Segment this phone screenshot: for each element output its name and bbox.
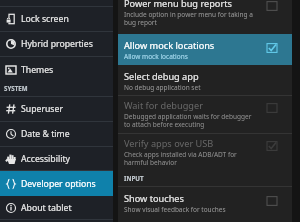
button[interactable]: Accessibility (0, 147, 113, 170)
button[interactable]: Verify apps over USB (118, 134, 292, 168)
button[interactable]: Toggle setting (265, 0, 278, 12)
button[interactable]: Toggle setting (265, 139, 278, 152)
button[interactable]: Wait for debugger (118, 96, 292, 134)
staticText: Hybrid properties (21, 38, 93, 50)
staticText: Select debug app (124, 70, 199, 83)
button[interactable]: Toggle setting (265, 194, 278, 207)
button[interactable]: Show touches (118, 187, 292, 217)
staticText: Allow mock locations (124, 39, 215, 52)
staticText: Developer options (21, 178, 96, 190)
staticText: Date & time (21, 128, 70, 140)
staticText: No debug application set (124, 83, 201, 92)
staticText: SYSTEM (4, 84, 28, 92)
button[interactable]: Themes (0, 57, 113, 82)
button[interactable]: Power menu bug reports (118, 0, 292, 34)
button[interactable]: Allow mock locations (118, 34, 292, 65)
staticText: Allow mock locations (124, 52, 188, 61)
staticText: Check apps installed via ADB/ADT for har… (124, 150, 254, 167)
staticText: Lock screen (21, 13, 69, 25)
staticText: About tablet (21, 202, 72, 214)
staticText: Show visual feedback for touches (124, 205, 226, 214)
staticText: Accessibility (21, 153, 70, 165)
button[interactable]: About tablet (0, 196, 113, 219)
button[interactable]: Select debug app (118, 65, 292, 96)
staticText: INPUT (124, 174, 144, 182)
button[interactable]: Hybrid properties (0, 32, 113, 56)
staticText: Verify apps over USB (124, 137, 214, 150)
button[interactable]: Toggle setting (265, 41, 278, 54)
staticText: Wait for debugger (124, 99, 203, 112)
button[interactable]: Date & time (0, 122, 113, 146)
staticText: Show touches (124, 192, 184, 205)
staticText: Themes (21, 64, 54, 76)
staticText: Include option in power menu for taking … (124, 10, 254, 27)
button[interactable]: Lock screen (0, 7, 113, 31)
staticText: Superuser (21, 103, 63, 115)
button[interactable]: Superuser (0, 97, 113, 121)
staticText: Debugged application waits for debugger … (124, 112, 254, 129)
button[interactable]: Developer options (0, 171, 113, 196)
staticText: Power menu bug reports (124, 0, 232, 10)
button[interactable]: Toggle setting (265, 101, 278, 114)
